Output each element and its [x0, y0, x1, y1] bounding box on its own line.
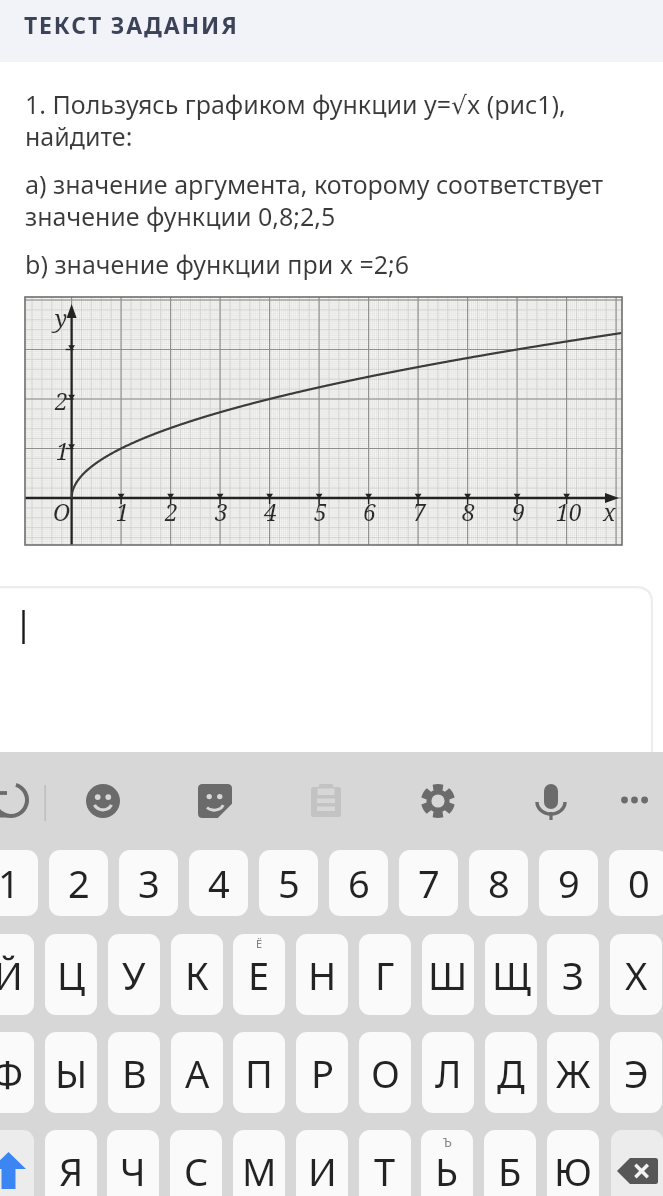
- button[interactable]: Ь: [421, 1130, 473, 1196]
- staticText: b) значение функции при x =2;6: [25, 247, 410, 281]
- button[interactable]: Ш: [422, 934, 474, 1015]
- button[interactable]: Н: [296, 934, 348, 1015]
- button[interactable]: О: [359, 1032, 411, 1113]
- button[interactable]: 6: [329, 850, 388, 916]
- button[interactable]: С: [170, 1130, 222, 1196]
- staticText: 9: [512, 496, 525, 527]
- staticText: Ь: [435, 1145, 459, 1196]
- staticText: 9: [558, 857, 580, 909]
- button[interactable]: 4: [189, 850, 248, 916]
- staticText: У: [122, 949, 146, 1001]
- staticText: Ю: [554, 1145, 592, 1196]
- staticText: Ж: [556, 1047, 591, 1099]
- staticText: x: [603, 496, 616, 527]
- staticText: М: [242, 1145, 277, 1196]
- button[interactable]: Ч: [107, 1130, 159, 1196]
- button[interactable]: Э: [610, 1032, 662, 1113]
- staticText: 1. Пользуясь графиком функции y=√x (рис1…: [25, 87, 615, 153]
- button[interactable]: More options: [613, 780, 653, 820]
- button[interactable]: 5: [259, 850, 318, 916]
- staticText: Ы: [55, 1047, 88, 1099]
- staticText: Ъ: [443, 1133, 452, 1151]
- button[interactable]: М: [233, 1130, 285, 1196]
- button[interactable]: [0, 586, 663, 752]
- button[interactable]: Е: [233, 934, 285, 1015]
- staticText: 2: [68, 857, 90, 909]
- staticText: 1: [56, 435, 69, 466]
- button[interactable]: Translate: [0, 779, 40, 821]
- button[interactable]: 3: [119, 850, 178, 916]
- staticText: 2: [165, 496, 178, 527]
- staticText: 6: [363, 496, 376, 527]
- staticText: 8: [488, 857, 510, 909]
- button[interactable]: 8: [469, 850, 528, 916]
- button[interactable]: Ы: [45, 1032, 97, 1113]
- staticText: O: [53, 496, 71, 527]
- button[interactable]: Settings: [421, 784, 455, 818]
- button[interactable]: Backspace: [611, 1130, 663, 1196]
- staticText: 6: [348, 857, 370, 909]
- button[interactable]: Voice input: [534, 782, 568, 822]
- button[interactable]: А: [171, 1032, 223, 1113]
- button[interactable]: Clipboard: [311, 784, 341, 817]
- button[interactable]: Д: [485, 1032, 537, 1113]
- staticText: Ё: [256, 936, 263, 951]
- staticText: y: [55, 302, 68, 333]
- button[interactable]: 7: [399, 850, 458, 916]
- button[interactable]: Т: [359, 1130, 411, 1196]
- staticText: Б: [498, 1145, 522, 1196]
- button[interactable]: 1: [0, 850, 38, 916]
- staticText: 0: [628, 857, 650, 909]
- button[interactable]: В: [108, 1032, 160, 1113]
- button[interactable]: П: [233, 1032, 285, 1113]
- staticText: Т: [374, 1145, 396, 1196]
- staticText: 3: [215, 496, 228, 527]
- staticText: С: [184, 1145, 209, 1196]
- staticText: Щ: [492, 949, 531, 1001]
- staticText: 8: [462, 496, 475, 527]
- staticText: Ч: [120, 1145, 146, 1196]
- button[interactable]: Щ: [485, 934, 537, 1015]
- button[interactable]: К: [171, 934, 223, 1015]
- button[interactable]: Shift: [0, 1130, 34, 1196]
- staticText: 5: [314, 496, 327, 527]
- button[interactable]: Stickers: [198, 784, 232, 818]
- button[interactable]: З: [547, 934, 599, 1015]
- staticText: 5: [278, 857, 300, 909]
- button[interactable]: Й: [0, 934, 34, 1015]
- button[interactable]: 0: [609, 850, 663, 916]
- button[interactable]: Emoji: [86, 784, 120, 818]
- button[interactable]: У: [108, 934, 160, 1015]
- button[interactable]: Б: [484, 1130, 536, 1196]
- staticText: 10: [556, 496, 582, 527]
- button[interactable]: Л: [422, 1032, 474, 1113]
- button[interactable]: И: [296, 1130, 348, 1196]
- staticText: В: [122, 1047, 147, 1099]
- staticText: А: [185, 1047, 210, 1099]
- staticText: 7: [413, 496, 426, 527]
- staticText: Ц: [57, 949, 86, 1001]
- button[interactable]: Х: [610, 934, 662, 1015]
- staticText: Л: [435, 1047, 462, 1099]
- staticText: 3: [138, 857, 160, 909]
- button[interactable]: 2: [49, 850, 108, 916]
- button[interactable]: 9: [539, 850, 598, 916]
- staticText: Х: [625, 949, 648, 1001]
- staticText: Э: [624, 1047, 649, 1099]
- staticText: З: [562, 949, 584, 1001]
- staticText: 1: [116, 496, 129, 527]
- staticText: И: [308, 1145, 337, 1196]
- staticText: Я: [59, 1145, 84, 1196]
- staticText: К: [185, 949, 209, 1001]
- button[interactable]: Г: [359, 934, 411, 1015]
- button[interactable]: Ф: [0, 1032, 34, 1113]
- button[interactable]: Р: [296, 1032, 348, 1113]
- button[interactable]: Ю: [547, 1130, 599, 1196]
- staticText: Й: [0, 949, 23, 1001]
- staticText: 1: [0, 857, 20, 909]
- button[interactable]: Я: [45, 1130, 97, 1196]
- staticText: Ф: [0, 1047, 24, 1099]
- button[interactable]: Ц: [45, 934, 97, 1015]
- button[interactable]: Ж: [547, 1032, 599, 1113]
- staticText: Е: [248, 949, 270, 1001]
